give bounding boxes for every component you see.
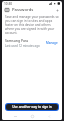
button[interactable]: Manage xyxy=(45,40,59,46)
button[interactable]: Use another way to sign in xyxy=(6,104,58,110)
staticText: Manage xyxy=(46,41,58,45)
staticText: Samsung Pass xyxy=(5,38,29,43)
staticText: Use another way to sign in xyxy=(12,105,52,109)
staticText: Passwords xyxy=(12,7,34,13)
button[interactable]: Recent apps xyxy=(11,113,19,120)
staticText: 10:30 xyxy=(4,2,13,6)
button[interactable]: Home xyxy=(28,113,36,120)
button[interactable]: Menu xyxy=(4,7,10,13)
button[interactable]: Samsung Pass xyxy=(5,38,59,48)
staticText: Last used 12 minutes ago xyxy=(5,44,40,48)
button[interactable]: Add password xyxy=(54,7,60,13)
staticText: Save and manage your passwords so you ca… xyxy=(5,15,59,35)
